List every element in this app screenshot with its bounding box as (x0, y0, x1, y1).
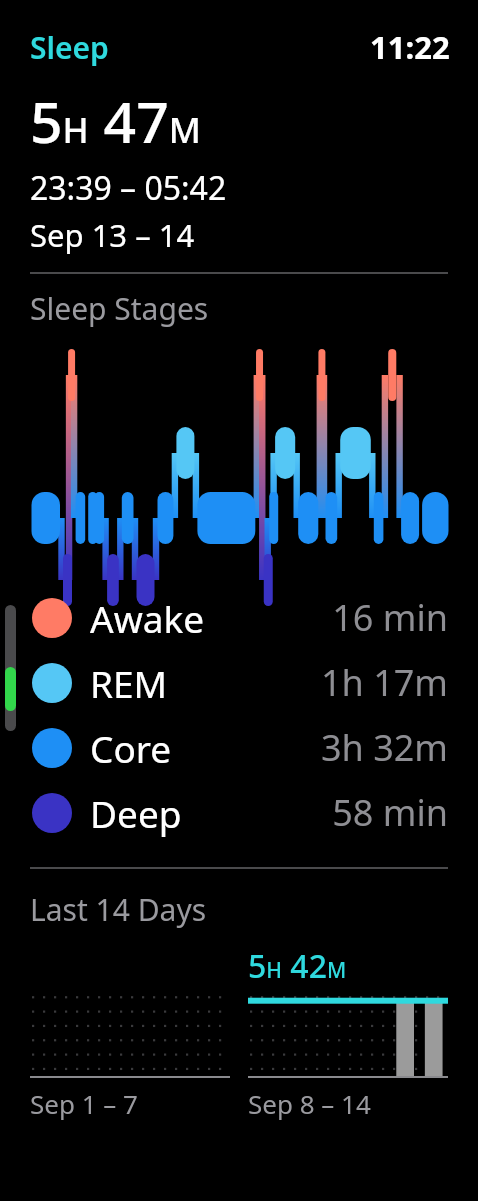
staticText: Sep 13 – 14 (30, 214, 195, 256)
staticText: 5H 47M (30, 82, 201, 160)
button[interactable]: REM (0, 650, 478, 715)
staticText: Sleep (30, 27, 109, 68)
staticText: 16 min (332, 593, 448, 642)
staticText: Awake (90, 593, 205, 643)
staticText: Sep 8 – 14 (248, 1086, 371, 1121)
staticText: Last 14 Days (30, 889, 207, 930)
button[interactable]: Sleep stages chart (0, 341, 478, 561)
staticText: Sep 1 – 7 (30, 1086, 138, 1121)
staticText: Sleep Stages (30, 288, 209, 329)
staticText: 58 min (332, 788, 448, 837)
staticText: 1h 17m (320, 658, 448, 707)
button[interactable]: Sep 1 – 7 (30, 944, 230, 1121)
button[interactable]: 5H 42M (248, 944, 448, 1121)
staticText: 11:22 (370, 26, 450, 68)
staticText: 3h 32m (320, 723, 448, 772)
staticText: 23:39 – 05:42 (30, 166, 227, 210)
staticText: 5H 42M (248, 944, 347, 986)
button[interactable]: Awake (0, 585, 478, 650)
staticText: Deep (90, 788, 182, 838)
staticText: Core (90, 723, 172, 773)
button[interactable]: Deep (0, 780, 478, 845)
staticText: REM (90, 658, 168, 708)
button[interactable]: Core (0, 715, 478, 780)
